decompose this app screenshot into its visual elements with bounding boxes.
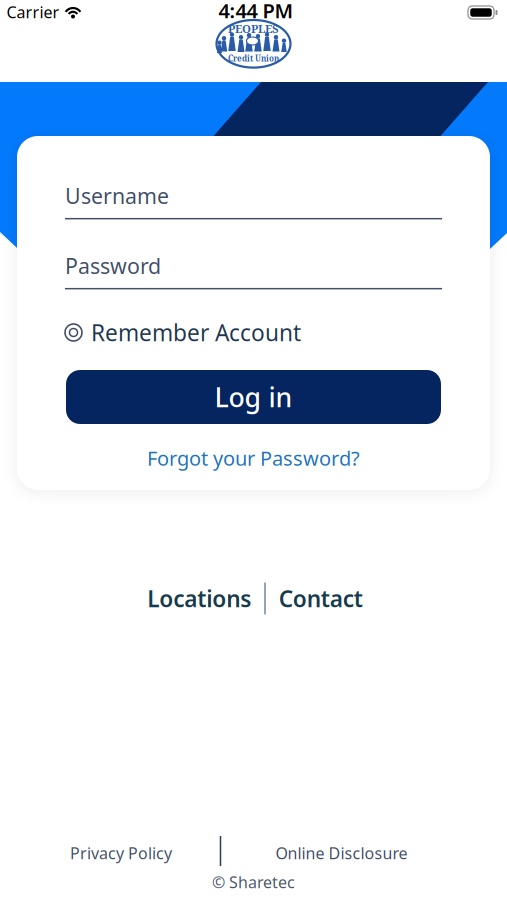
button[interactable]: Online Disclosure xyxy=(275,842,407,864)
button[interactable]: Locations xyxy=(147,583,251,613)
button[interactable]: Forgot your Password? xyxy=(147,445,360,471)
staticText: Credit Union xyxy=(228,53,279,64)
button[interactable]: Log in xyxy=(66,370,441,424)
button[interactable]: Username xyxy=(65,182,442,219)
staticText: Forgot your Password? xyxy=(147,445,360,471)
staticText: Carrier xyxy=(6,1,59,23)
staticText: Log in xyxy=(214,379,292,415)
staticText: Password xyxy=(65,252,161,280)
staticText: Username xyxy=(65,182,169,210)
staticText: Privacy Policy xyxy=(70,842,172,864)
staticText: Remember Account xyxy=(91,317,301,347)
button[interactable]: Password xyxy=(65,252,442,289)
staticText: 4:44 PM xyxy=(218,0,293,24)
button[interactable]: Remember Account xyxy=(65,317,442,347)
staticText: Online Disclosure xyxy=(275,842,407,864)
staticText: © Sharetec xyxy=(212,871,295,893)
staticText: PEOPLES xyxy=(228,21,279,36)
button[interactable]: Privacy Policy xyxy=(70,842,172,864)
button[interactable]: Contact xyxy=(279,583,363,613)
staticText: Contact xyxy=(279,583,363,613)
staticText: Locations xyxy=(147,583,251,613)
